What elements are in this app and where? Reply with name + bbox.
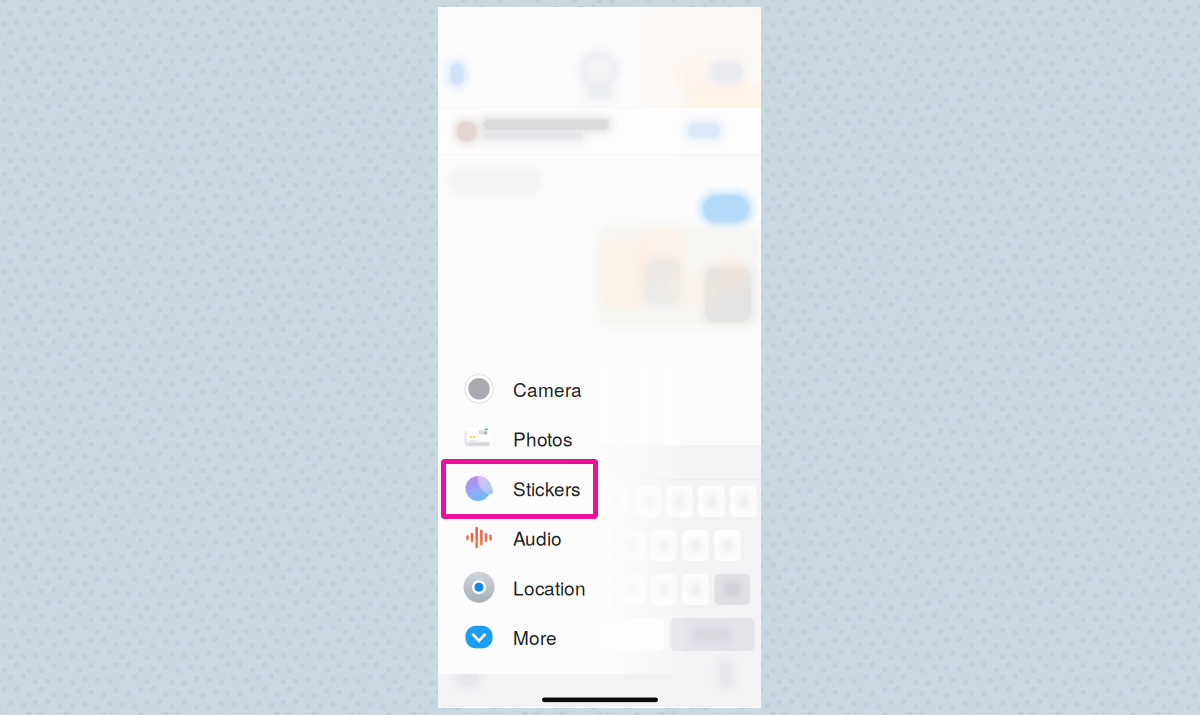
staticText: Photos: [513, 425, 572, 452]
button[interactable]: Audio: [438, 513, 643, 562]
button[interactable]: Camera: [438, 364, 643, 414]
staticText: Location: [513, 574, 586, 601]
button[interactable]: Photos: [438, 414, 643, 463]
staticText: Camera: [513, 375, 582, 402]
button[interactable]: Location: [438, 562, 643, 612]
staticText: More: [513, 623, 557, 650]
button[interactable]: Stickers: [438, 463, 643, 513]
staticText: Audio: [513, 524, 562, 551]
staticText: Stickers: [513, 474, 580, 501]
button[interactable]: More: [438, 612, 643, 662]
